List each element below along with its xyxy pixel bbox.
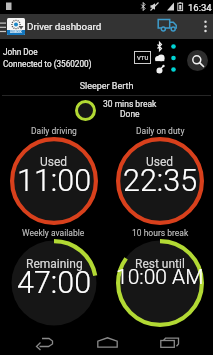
staticText: Weekly available bbox=[22, 228, 85, 238]
staticText: Connected to (3560200) bbox=[3, 59, 92, 69]
staticText: Used bbox=[40, 155, 68, 169]
button[interactable]: Remaining bbox=[10, 239, 98, 327]
staticText: Remaining bbox=[26, 257, 83, 271]
staticText: 11:00 bbox=[17, 163, 92, 199]
button[interactable]: More options bbox=[197, 14, 213, 39]
staticText: VTU bbox=[137, 54, 149, 61]
button[interactable]: Vehicle bbox=[157, 14, 179, 39]
staticText: LOGBOOK bbox=[10, 31, 22, 34]
button[interactable]: Open navigation drawer bbox=[0, 14, 7, 39]
button[interactable]: Home bbox=[87, 330, 127, 355]
staticText: Daily driving bbox=[31, 126, 77, 136]
button[interactable]: Back bbox=[25, 330, 65, 355]
button[interactable]: Used bbox=[116, 137, 204, 225]
staticText: 30 mins break bbox=[103, 99, 157, 109]
staticText: Driver dashboard bbox=[27, 21, 102, 32]
button[interactable]: Used bbox=[10, 137, 98, 225]
button[interactable]: Rest until bbox=[116, 239, 204, 327]
staticText: 10 hours break bbox=[132, 228, 189, 238]
staticText: 10:00 AM bbox=[116, 265, 204, 290]
staticText: Used bbox=[146, 155, 174, 169]
staticText: Done bbox=[120, 109, 140, 119]
staticText: Sleeper Berth bbox=[0, 81, 213, 92]
staticText: John Doe bbox=[3, 47, 38, 57]
staticText: 22:35 bbox=[123, 163, 198, 199]
button[interactable]: Recent apps bbox=[150, 330, 190, 355]
button[interactable]: Search bbox=[187, 50, 208, 71]
staticText: Daily on duty bbox=[136, 126, 185, 136]
staticText: 47:00 bbox=[17, 265, 92, 301]
staticText: 16:34 bbox=[188, 2, 212, 13]
staticText: Rest until bbox=[135, 257, 185, 271]
